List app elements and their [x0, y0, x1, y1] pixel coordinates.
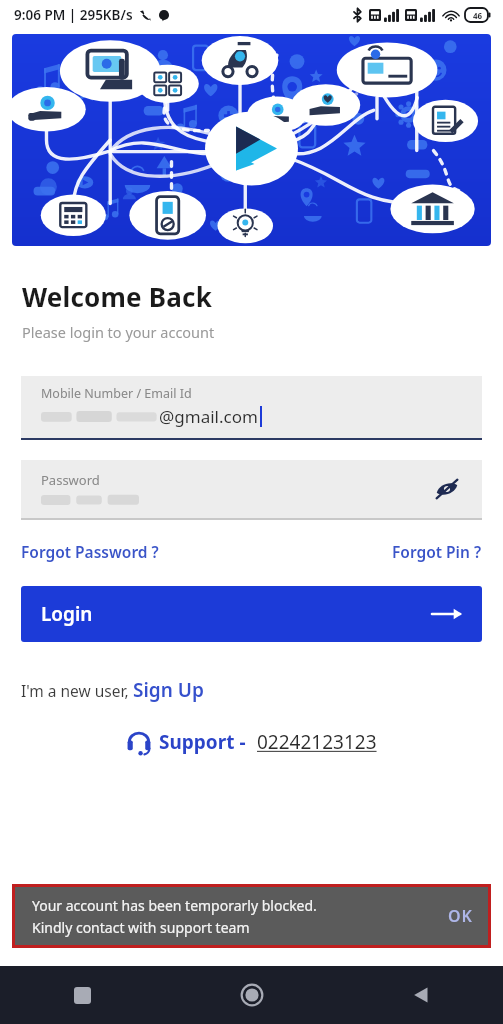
- staticText: Password: [41, 471, 100, 489]
- staticText: 9:06 PM | 295KB/s: [14, 6, 133, 24]
- button[interactable]: Mobile Number / Email Id: [21, 376, 482, 440]
- staticText: 46: [473, 10, 483, 21]
- button[interactable]: Login: [21, 586, 482, 642]
- staticText: @gmail.com: [159, 405, 258, 428]
- staticText: Support -: [159, 729, 246, 755]
- button[interactable]: Forgot Pin ?: [392, 541, 482, 562]
- button[interactable]: Your account has been temporarly blocked…: [12, 884, 491, 948]
- staticText: 02242123123: [257, 729, 377, 755]
- staticText: Forgot Pin ?: [392, 541, 482, 562]
- staticText: Please login to your account: [22, 322, 215, 342]
- staticText: Mobile Number / Email Id: [41, 385, 192, 402]
- staticText: Sign Up: [133, 677, 204, 703]
- button[interactable]: Toggle password visibility: [430, 472, 464, 506]
- button[interactable]: Recent apps: [60, 973, 104, 1017]
- button[interactable]: Password: [21, 460, 482, 520]
- staticText: Forgot Password ?: [21, 541, 159, 562]
- button[interactable]: Forgot Password ?: [21, 541, 159, 562]
- staticText: OK: [448, 905, 473, 927]
- button[interactable]: I'm a new user,: [21, 677, 204, 703]
- button[interactable]: Home: [230, 973, 274, 1017]
- staticText: Kindly contact with support team: [32, 918, 250, 937]
- staticText: Login: [41, 601, 93, 627]
- button[interactable]: Back: [399, 973, 443, 1017]
- button[interactable]: Support -: [0, 729, 503, 755]
- button[interactable]: OK: [448, 905, 473, 927]
- staticText: Welcome Back: [22, 279, 212, 314]
- staticText: Your account has been temporarly blocked…: [32, 896, 317, 915]
- staticText: I'm a new user,: [21, 680, 133, 701]
